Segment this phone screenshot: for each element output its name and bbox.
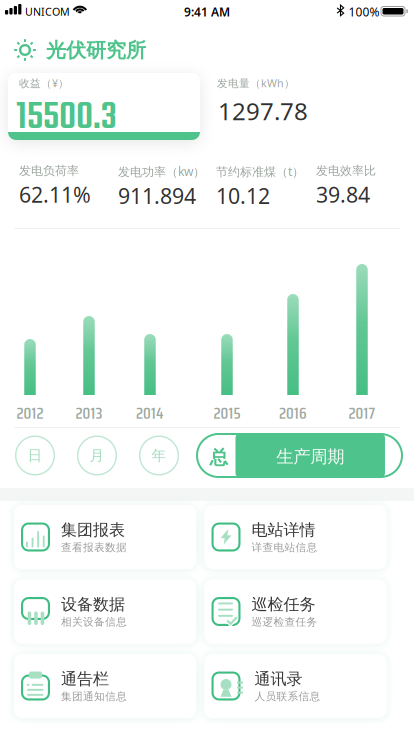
- staticText: 911.894: [118, 181, 196, 210]
- staticText: 2013: [75, 400, 102, 426]
- button[interactable]: 电站详情: [203, 504, 387, 570]
- staticText: 62.11%: [19, 180, 91, 208]
- staticText: 9:41 AM: [184, 4, 230, 20]
- staticText: 节约标准煤（t）: [216, 163, 304, 179]
- staticText: 发电效率比: [316, 163, 376, 178]
- staticText: 集团报表: [61, 520, 125, 540]
- staticText: 发电负荷率: [19, 163, 79, 178]
- staticText: UNICOM: [25, 4, 70, 19]
- button[interactable]: 巡检任务: [203, 578, 387, 644]
- staticText: 电站详情: [251, 520, 315, 540]
- staticText: 日: [27, 446, 42, 464]
- staticText: 集团通知信息: [61, 690, 127, 703]
- staticText: 年: [151, 446, 166, 464]
- staticText: 查看报表数据: [61, 541, 127, 554]
- button[interactable]: 年: [139, 435, 179, 475]
- staticText: 设备数据: [61, 595, 125, 614]
- staticText: 光伏研究所: [46, 38, 146, 63]
- staticText: 人员联系信息: [254, 690, 320, 703]
- staticText: 2015: [213, 400, 240, 426]
- staticText: 发电量（kWh）: [217, 76, 295, 90]
- staticText: 2014: [136, 400, 164, 426]
- button[interactable]: 总: [196, 433, 403, 478]
- button[interactable]: 日: [15, 435, 55, 475]
- staticText: 巡逻检查任务: [251, 615, 317, 628]
- button[interactable]: 集团报表: [13, 504, 197, 570]
- staticText: 详查电站信息: [251, 541, 317, 554]
- staticText: 相关设备信息: [61, 615, 127, 628]
- button[interactable]: 月: [77, 435, 117, 475]
- staticText: 收益（¥）: [19, 76, 69, 90]
- staticText: 2017: [348, 400, 375, 426]
- staticText: 通讯录: [254, 669, 302, 689]
- staticText: 2016: [279, 400, 307, 426]
- staticText: 通告栏: [61, 669, 109, 689]
- button[interactable]: 通告栏: [13, 653, 197, 719]
- staticText: 100%: [348, 4, 379, 20]
- staticText: 1297.78: [218, 95, 308, 127]
- staticText: 发电功率（kw）: [118, 163, 205, 179]
- staticText: 巡检任务: [251, 595, 315, 614]
- button[interactable]: 设备数据: [13, 578, 197, 644]
- staticText: 10.12: [216, 181, 270, 210]
- staticText: 月: [89, 446, 104, 464]
- staticText: 39.84: [316, 180, 370, 208]
- staticText: 2012: [16, 400, 43, 426]
- staticText: 15500.3: [16, 89, 117, 147]
- staticText: 生产周期: [276, 446, 344, 467]
- staticText: 总: [209, 446, 228, 469]
- button[interactable]: 通讯录: [203, 653, 387, 719]
